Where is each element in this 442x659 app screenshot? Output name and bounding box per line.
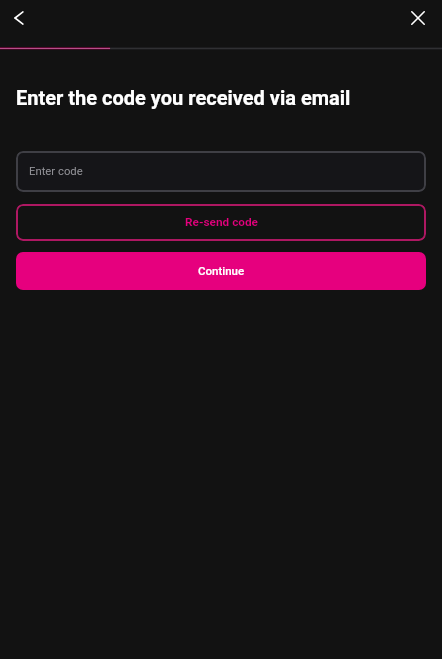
button[interactable]: Close xyxy=(402,2,434,34)
staticText: Enter code xyxy=(29,165,83,178)
staticText: Continue xyxy=(198,264,245,277)
staticText: Enter the code you received via email xyxy=(16,86,351,109)
button[interactable]: Back xyxy=(3,2,35,34)
staticText: Re-send code xyxy=(185,215,258,229)
button[interactable]: Enter code xyxy=(16,151,426,192)
button[interactable]: Continue xyxy=(16,252,426,290)
button[interactable]: Re-send code xyxy=(16,204,426,241)
